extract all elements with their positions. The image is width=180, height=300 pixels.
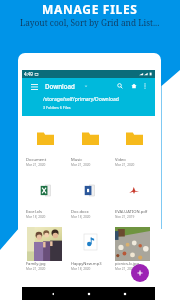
staticText: Mar 21, 2020 — [71, 163, 91, 167]
staticText: Nov 21, 2019 — [115, 215, 135, 219]
staticText: MANAGE FILES — [42, 1, 138, 17]
staticText: Layout cool, Sort by Grid and List... — [20, 17, 160, 28]
button[interactable]: Home — [128, 80, 140, 92]
staticText: /storage/self/primary/Download — [43, 96, 119, 103]
staticText: Mar 21, 2020 — [115, 267, 135, 271]
staticText: 4:49 — [24, 71, 33, 77]
button[interactable]: Menu — [28, 80, 41, 93]
staticText: Family.jpg — [26, 261, 46, 267]
staticText: Mar 21, 2020 — [115, 163, 135, 167]
button[interactable]: Music — [67, 118, 111, 170]
staticText: Mar 18, 2020 — [71, 267, 91, 271]
button[interactable]: Family.jpg — [22, 222, 67, 274]
button[interactable]: More options — [139, 80, 151, 92]
staticText: HappyNew.mp3 — [71, 261, 102, 267]
staticText: Mar 18, 2020 — [26, 215, 46, 219]
staticText: Excel.xls — [26, 209, 42, 215]
staticText: Document — [26, 157, 47, 163]
button[interactable]: HappyNew.mp3 — [67, 222, 111, 274]
button[interactable]: Back — [47, 288, 58, 299]
staticText: Video — [115, 157, 126, 163]
staticText: Doc.docx — [71, 209, 89, 215]
staticText: Music — [71, 157, 83, 163]
staticText: Mar 21, 2020 — [26, 163, 46, 167]
staticText: Mar 18, 2020 — [71, 215, 91, 219]
staticText: Download — [45, 82, 75, 90]
button[interactable]: Video — [111, 118, 155, 170]
button[interactable]: Doc.docx — [67, 170, 111, 222]
button[interactable]: picnics-b.jpg — [111, 222, 155, 274]
staticText: picnics-b.jpg — [115, 261, 140, 267]
button[interactable]: Excel.xls — [22, 170, 67, 222]
button[interactable]: Add — [131, 264, 149, 282]
button[interactable]: Search — [114, 80, 126, 92]
staticText: 3 Folders 6 Files — [43, 105, 71, 110]
staticText: EVALUATION.pdf — [115, 209, 148, 215]
button[interactable]: EVALUATION.pdf — [111, 170, 155, 222]
button[interactable]: Home — [83, 288, 94, 299]
staticText: Mar 21, 2020 — [26, 267, 46, 271]
button[interactable]: Document — [22, 118, 67, 170]
button[interactable]: Recent apps — [119, 288, 130, 299]
